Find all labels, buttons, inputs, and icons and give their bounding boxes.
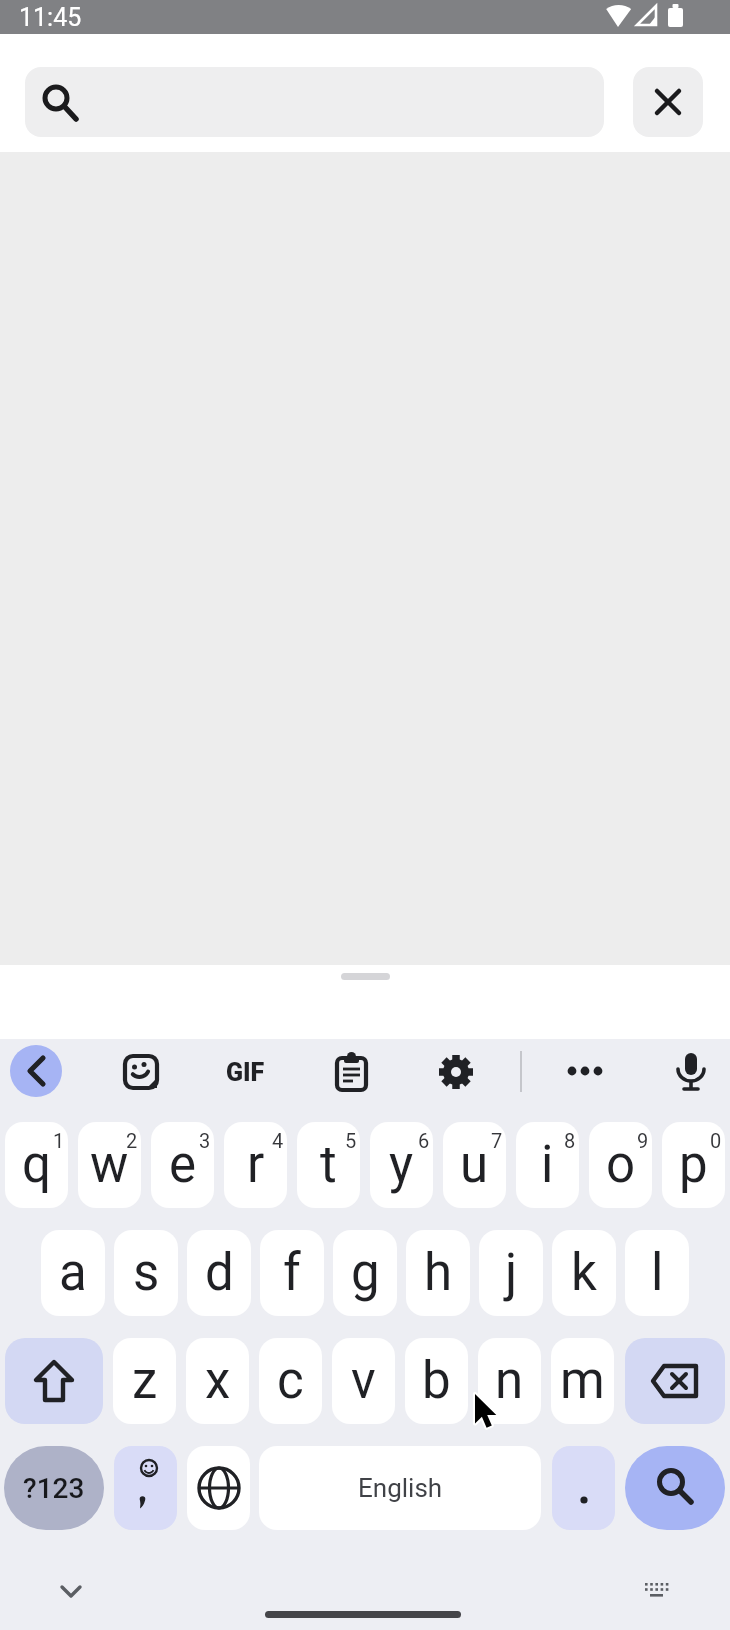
staticText: k xyxy=(571,1243,597,1303)
staticText: English xyxy=(358,1473,443,1503)
staticText: g xyxy=(351,1243,380,1303)
staticText: i xyxy=(541,1135,554,1195)
button[interactable]: g xyxy=(333,1230,397,1316)
staticText: GIF xyxy=(226,1058,265,1087)
button[interactable] xyxy=(5,1122,68,1208)
button[interactable] xyxy=(187,1446,250,1530)
button[interactable] xyxy=(78,1122,141,1208)
button[interactable]: j xyxy=(479,1230,543,1316)
button[interactable] xyxy=(662,1122,725,1208)
staticText: l xyxy=(651,1243,664,1303)
button[interactable] xyxy=(671,1050,711,1094)
staticText: j xyxy=(505,1243,518,1303)
button[interactable] xyxy=(121,1052,161,1092)
button[interactable] xyxy=(224,1122,287,1208)
staticText: e xyxy=(169,1135,197,1195)
button[interactable]: a xyxy=(41,1230,105,1316)
staticText: b xyxy=(422,1351,451,1411)
button[interactable] xyxy=(589,1122,652,1208)
staticText: p xyxy=(679,1135,708,1195)
staticText: 2 xyxy=(126,1129,138,1152)
button[interactable] xyxy=(436,1052,476,1092)
button[interactable]: z xyxy=(113,1338,176,1424)
button[interactable] xyxy=(516,1122,579,1208)
button[interactable]: x xyxy=(186,1338,249,1424)
staticText: 3 xyxy=(199,1129,211,1152)
staticText: 0 xyxy=(710,1129,722,1152)
button[interactable]: v xyxy=(332,1338,395,1424)
staticText: d xyxy=(205,1243,234,1303)
staticText: 8 xyxy=(564,1129,576,1152)
button[interactable] xyxy=(625,1446,725,1530)
button[interactable]: l xyxy=(625,1230,689,1316)
staticText: h xyxy=(424,1243,453,1303)
button[interactable] xyxy=(114,1446,177,1530)
staticText: 7 xyxy=(491,1129,503,1152)
staticText: q xyxy=(22,1135,51,1195)
staticText: 5 xyxy=(345,1129,357,1152)
button[interactable]: c xyxy=(259,1338,322,1424)
button[interactable]: English xyxy=(259,1446,541,1530)
staticText: ?123 xyxy=(23,1472,85,1505)
button[interactable] xyxy=(10,1045,62,1097)
button[interactable] xyxy=(151,1122,214,1208)
button[interactable] xyxy=(552,1446,615,1530)
staticText: 6 xyxy=(418,1129,430,1152)
button[interactable]: d xyxy=(187,1230,251,1316)
staticText: y xyxy=(389,1135,414,1195)
button[interactable]: m xyxy=(551,1338,614,1424)
button[interactable] xyxy=(625,1338,725,1424)
staticText: a xyxy=(59,1243,87,1303)
button[interactable]: ?123 xyxy=(4,1446,104,1530)
staticText: z xyxy=(132,1351,158,1411)
staticText: m xyxy=(560,1351,605,1411)
button[interactable] xyxy=(5,1338,103,1424)
staticText: t xyxy=(320,1135,337,1195)
staticText: f xyxy=(283,1243,301,1303)
staticText: u xyxy=(460,1135,489,1195)
button[interactable] xyxy=(443,1122,506,1208)
button[interactable] xyxy=(331,1052,371,1092)
staticText: v xyxy=(351,1351,376,1411)
staticText: s xyxy=(133,1243,160,1303)
staticText: n xyxy=(495,1351,524,1411)
button[interactable]: b xyxy=(405,1338,468,1424)
button[interactable] xyxy=(370,1122,433,1208)
staticText: 4 xyxy=(272,1129,284,1152)
button[interactable] xyxy=(633,67,703,137)
button[interactable]: k xyxy=(552,1230,616,1316)
staticText: c xyxy=(277,1351,304,1411)
staticText: o xyxy=(606,1135,636,1195)
staticText: 1 xyxy=(53,1129,65,1152)
staticText: 9 xyxy=(637,1129,649,1152)
button[interactable]: n xyxy=(478,1338,541,1424)
staticText: w xyxy=(90,1135,129,1195)
button[interactable]: f xyxy=(260,1230,324,1316)
button[interactable]: GIF xyxy=(215,1052,275,1092)
staticText: 11:45 xyxy=(19,3,82,32)
button[interactable]: s xyxy=(114,1230,178,1316)
button[interactable]: h xyxy=(406,1230,470,1316)
button[interactable] xyxy=(297,1122,360,1208)
staticText: r xyxy=(247,1135,265,1195)
staticText: x xyxy=(205,1351,231,1411)
button[interactable] xyxy=(25,67,604,137)
